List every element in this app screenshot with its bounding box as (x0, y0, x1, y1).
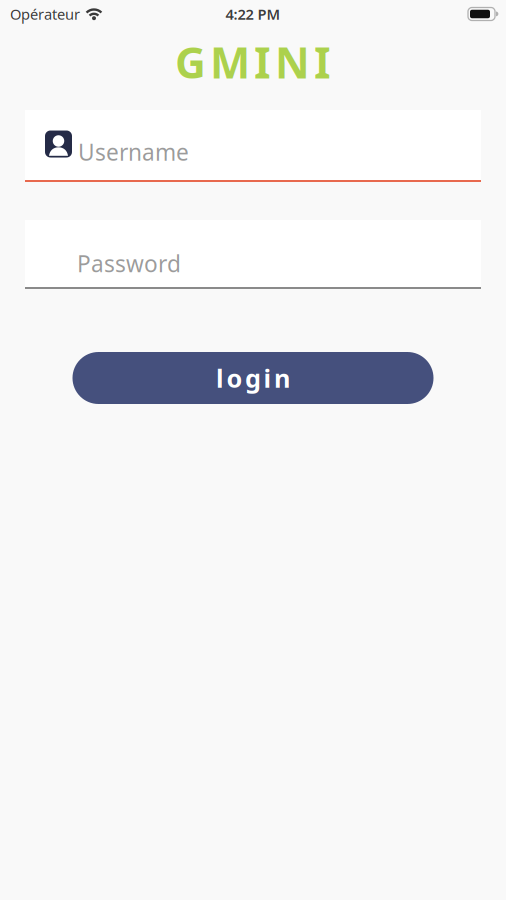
button[interactable]: Username (25, 110, 481, 182)
staticText: Password (77, 248, 181, 278)
staticText: I (314, 34, 331, 90)
button[interactable]: Password (25, 220, 481, 289)
staticText: Opérateur (10, 4, 80, 24)
staticText: I (254, 34, 271, 90)
staticText: N (275, 34, 310, 90)
staticText: Username (78, 137, 189, 167)
staticText: login (216, 361, 290, 395)
staticText: 4:22 PM (225, 4, 280, 24)
staticText: G (175, 34, 206, 90)
staticText: M (210, 34, 250, 90)
button[interactable]: login (72, 352, 433, 404)
